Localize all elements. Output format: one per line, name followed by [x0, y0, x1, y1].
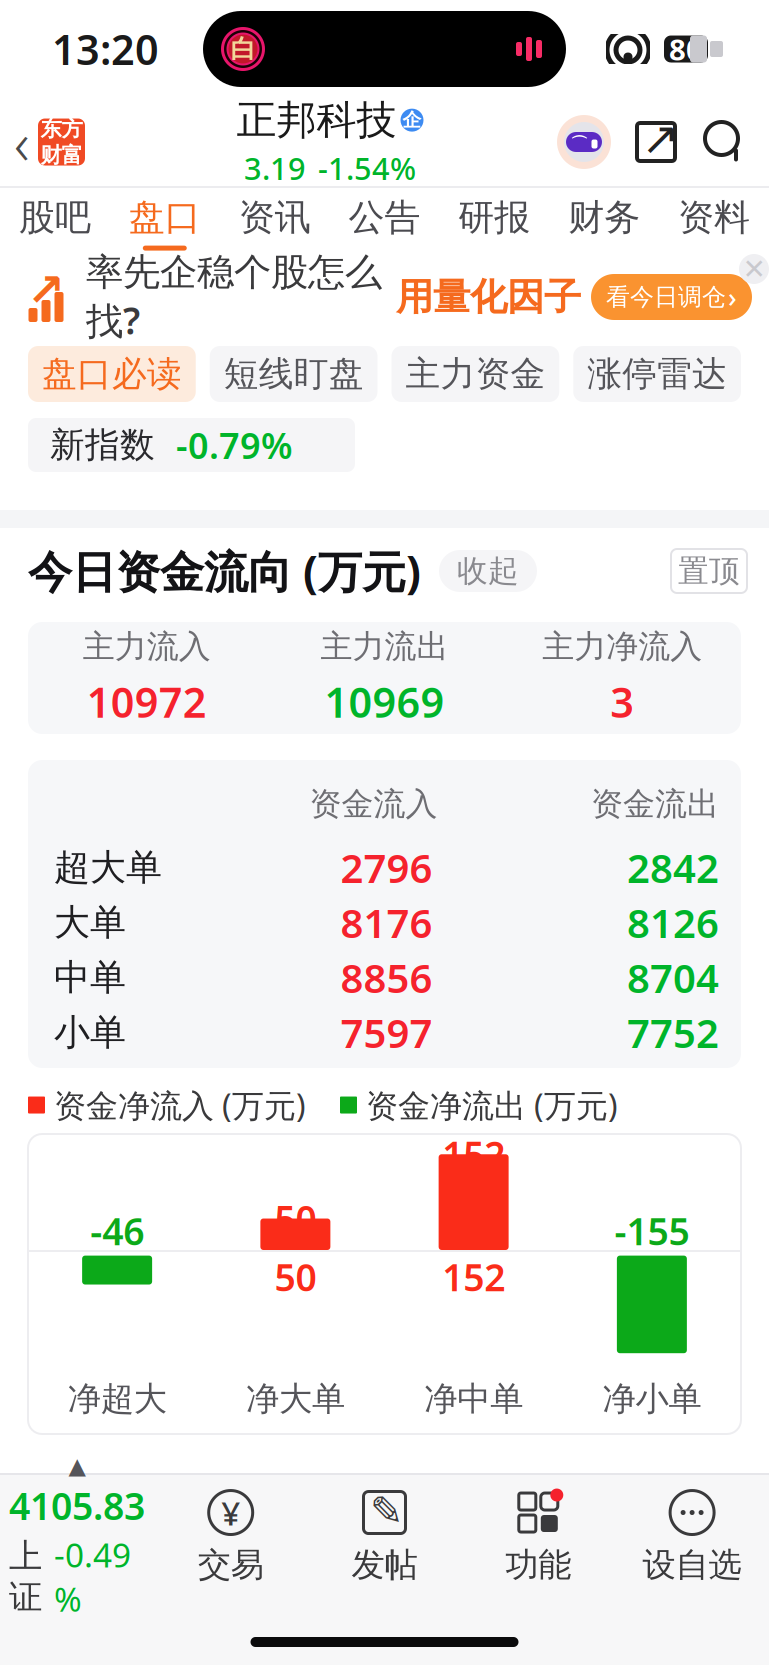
staticText: -0.49%	[54, 1532, 131, 1621]
staticText: 152	[442, 1129, 505, 1179]
staticText: 净大单	[246, 1378, 345, 1419]
button[interactable]: 研报	[439, 181, 549, 257]
staticText: 用量化因子	[396, 274, 581, 320]
staticText: 发帖	[351, 1544, 417, 1585]
staticText: 8856	[340, 951, 432, 1004]
staticText: 资金净流出 (万元)	[366, 1084, 618, 1126]
staticText: 3.19	[244, 148, 306, 188]
staticText: 资金净流入 (万元)	[54, 1084, 306, 1126]
staticText: 东方	[40, 116, 82, 142]
staticText: -0.79%	[176, 421, 293, 469]
staticText: 设自选	[643, 1544, 742, 1585]
staticText: 企	[402, 109, 421, 132]
staticText: 大单	[54, 900, 126, 945]
staticText: 50	[274, 1252, 316, 1302]
staticText: 置顶	[678, 552, 740, 590]
staticText: -1.54%	[318, 148, 416, 188]
staticText: 小单	[54, 1010, 126, 1055]
staticText: 率先企稳个股怎么找?	[86, 249, 382, 345]
staticText: 看今日调仓	[606, 282, 726, 312]
staticText: 资金流入	[309, 784, 437, 824]
staticText: 152	[442, 1252, 505, 1302]
staticText: 交易	[198, 1544, 264, 1585]
button[interactable]: 财务	[549, 181, 659, 257]
staticText: 2796	[340, 841, 432, 894]
button[interactable]: Close ad	[739, 254, 769, 284]
staticText: 短线盯盘	[224, 353, 364, 395]
button[interactable]: Back	[0, 103, 85, 181]
button[interactable]: ✎	[308, 1488, 461, 1585]
button[interactable]: 涨停雷达	[573, 346, 741, 402]
button[interactable]: 主力资金	[391, 346, 559, 402]
button[interactable]: 功能	[461, 1488, 615, 1585]
staticText: 收起	[457, 552, 519, 590]
button[interactable]: 短线盯盘	[210, 346, 378, 402]
button[interactable]: ▲	[0, 1453, 154, 1621]
staticText: 50	[274, 1194, 316, 1243]
staticText: 8176	[340, 896, 432, 949]
staticText: 7752	[627, 1006, 719, 1059]
staticText: ↗	[27, 264, 65, 316]
button[interactable]: Search	[701, 118, 749, 166]
staticText: ‹	[14, 103, 30, 181]
button[interactable]: 收起	[439, 550, 537, 592]
button[interactable]: 资讯	[220, 181, 330, 257]
staticText: 3	[610, 674, 634, 729]
staticText: 正邦科技	[236, 96, 396, 145]
staticText: 涨停雷达	[587, 353, 727, 395]
staticText: 80	[669, 29, 703, 68]
staticText: ›	[728, 279, 737, 315]
button[interactable]: 公告	[330, 181, 439, 257]
staticText: ↗	[641, 113, 679, 164]
staticText: 功能	[505, 1544, 571, 1585]
button[interactable]: Share	[633, 119, 679, 165]
staticText: 2842	[627, 841, 719, 894]
staticText: 新指数	[50, 424, 155, 466]
staticText: 净中单	[424, 1378, 523, 1419]
staticText: 主力净流入	[542, 627, 702, 666]
staticText: 净小单	[602, 1378, 701, 1419]
staticText: ¥	[221, 1490, 240, 1535]
staticText: 主力资金	[405, 353, 545, 395]
staticText: 今日资金流向 (万元)	[28, 542, 421, 600]
button[interactable]: 资料	[659, 181, 769, 257]
staticText: 盘口	[129, 195, 201, 240]
staticText: 资金流出	[591, 784, 719, 824]
staticText: -155	[614, 1206, 689, 1256]
staticText: 4105.83	[9, 1481, 145, 1530]
staticText: ✕	[742, 253, 765, 285]
staticText: -46	[90, 1206, 144, 1256]
button[interactable]: 新指数	[28, 418, 355, 472]
staticText: 13:20	[52, 22, 159, 76]
staticText: ✎	[370, 1488, 404, 1534]
button[interactable]: 设自选	[615, 1488, 769, 1585]
staticText: 上证	[9, 1536, 42, 1618]
button[interactable]: ¥	[154, 1488, 308, 1585]
staticText: 财富	[40, 142, 82, 168]
staticText: 超大单	[54, 845, 162, 890]
button[interactable]: 置顶	[671, 549, 747, 593]
staticText: 盘口必读	[42, 353, 182, 395]
staticText: 8126	[627, 896, 719, 949]
button[interactable]: 盘口必读	[28, 346, 196, 402]
button[interactable]: AI assistant	[557, 115, 611, 169]
staticText: 主力流入	[83, 627, 211, 666]
staticText: ▲	[68, 1453, 85, 1479]
staticText: 财务	[568, 195, 640, 240]
staticText: 资料	[678, 195, 750, 240]
staticText: ⌒	[570, 133, 587, 155]
staticText: 公告	[348, 195, 420, 240]
staticText: 净超大	[68, 1378, 167, 1419]
staticText: 研报	[458, 195, 530, 240]
staticText: 8704	[627, 951, 719, 1004]
staticText: 主力流出	[320, 627, 448, 666]
staticText: 中单	[54, 955, 126, 1000]
button[interactable]: 盘口	[110, 181, 220, 257]
staticText: 10969	[324, 674, 444, 729]
staticText: 白	[230, 33, 255, 64]
button[interactable]: ↗	[0, 252, 769, 342]
staticText: 10972	[87, 674, 207, 729]
staticText: 7597	[340, 1006, 432, 1059]
button[interactable]: 股吧	[0, 181, 110, 257]
staticText: 股吧	[19, 195, 91, 240]
